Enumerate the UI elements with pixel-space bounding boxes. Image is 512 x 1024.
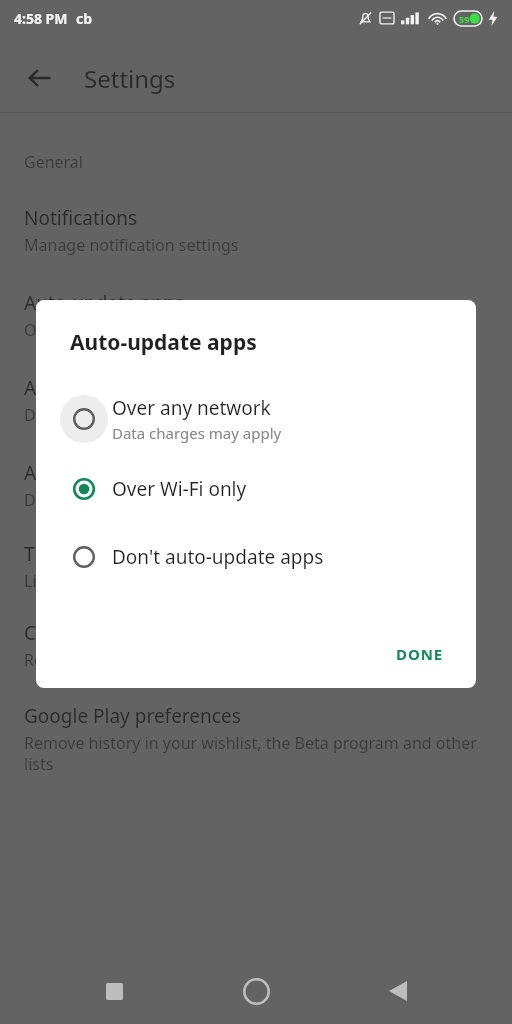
button[interactable]: Google Play preferences [0, 703, 512, 775]
button[interactable]: Home [228, 963, 284, 1019]
staticText: DONE [396, 644, 444, 664]
button[interactable]: Over Wi-Fi only [36, 455, 476, 523]
staticText: Settings [84, 62, 176, 95]
staticText: Over Wi-Fi only [112, 476, 247, 502]
button[interactable]: Back [370, 963, 426, 1019]
button[interactable]: Theme [0, 541, 512, 592]
button[interactable]: Clear local search history [0, 620, 512, 671]
staticText: Auto-update apps [24, 290, 184, 316]
staticText: App download preference [24, 375, 255, 401]
staticText: Auto-play videos [24, 460, 172, 486]
staticText: General [24, 151, 83, 173]
button[interactable]: Back [0, 44, 512, 112]
staticText: 4:58 PM [14, 9, 68, 28]
staticText: Don't auto-update apps [112, 544, 324, 570]
button[interactable]: Notifications [0, 205, 512, 256]
button[interactable]: Recent apps [86, 963, 142, 1019]
staticText: Clear local search history [24, 620, 247, 646]
staticText: Remove searches that you have performed … [24, 649, 471, 671]
button[interactable]: App download preference [0, 375, 512, 426]
button[interactable]: Back [16, 54, 64, 102]
button[interactable]: DONE [380, 634, 460, 674]
staticText: Data charges may apply [24, 404, 205, 426]
staticText: 59 [459, 13, 470, 25]
button[interactable]: Over any network [36, 383, 476, 455]
staticText: Remove history in your wishlist, the Bet… [24, 732, 488, 775]
staticText: cb [76, 9, 93, 28]
staticText: Auto-update apps [70, 328, 257, 357]
staticText: Manage notification settings [24, 234, 239, 256]
staticText: Over any network [112, 395, 271, 421]
staticText: Light [24, 570, 63, 592]
staticText: Data charges may apply [112, 423, 282, 443]
staticText: Google Play preferences [24, 703, 241, 729]
button[interactable]: Auto-update apps [0, 290, 512, 341]
button[interactable]: Don't auto-update apps [36, 523, 476, 591]
staticText: Over Wi-Fi only [24, 319, 138, 341]
button[interactable]: Auto-play videos [0, 460, 512, 511]
staticText: Notifications [24, 205, 138, 231]
staticText: Data charges may apply [24, 489, 205, 511]
staticText: Theme [24, 541, 86, 567]
